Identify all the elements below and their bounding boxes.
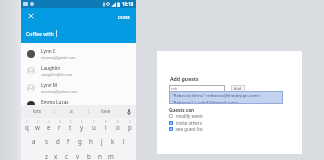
staticText: v — [76, 152, 80, 160]
staticText: o — [116, 123, 120, 131]
staticText: u — [92, 123, 96, 131]
button[interactable]: DONE — [118, 15, 130, 21]
button[interactable]: x — [51, 152, 61, 160]
staticText: Emma Lucas — [41, 99, 69, 105]
staticText: k — [111, 137, 115, 145]
staticText: w — [35, 123, 40, 131]
button[interactable]: 9 — [112, 123, 124, 131]
button[interactable]: k — [107, 137, 118, 145]
staticText: m — [108, 152, 114, 160]
staticText: 5 — [70, 120, 72, 124]
button[interactable]: v — [72, 152, 83, 160]
button[interactable]: reb — [169, 85, 225, 92]
button[interactable]: f — [63, 137, 74, 145]
button[interactable]: b — [83, 152, 94, 160]
button[interactable]: s — [40, 137, 52, 145]
staticText: j — [101, 137, 103, 145]
staticText: Lynn M — [41, 82, 58, 88]
button[interactable]: modify event — [169, 113, 205, 119]
staticText: b — [87, 152, 91, 160]
staticText: 2 — [37, 120, 39, 124]
staticText: s — [45, 137, 48, 145]
staticText: Guests can — [169, 107, 194, 113]
staticText: 1 — [26, 120, 28, 124]
button[interactable]: d — [52, 137, 63, 145]
button[interactable]: n — [94, 152, 105, 160]
staticText: Coffee with — [26, 30, 54, 37]
button[interactable]: c — [61, 152, 72, 160]
staticText: DONE — [118, 15, 130, 21]
button[interactable]: Laughlin — [21, 62, 136, 79]
staticText: slaughlin@ltk.com — [41, 72, 72, 77]
staticText: a — [70, 108, 73, 115]
staticText: 10:18 — [122, 1, 134, 7]
button[interactable]: j — [96, 137, 107, 145]
staticText: a — [32, 137, 36, 145]
button[interactable]: Voice input — [122, 105, 136, 118]
staticText: modify event — [176, 113, 203, 119]
button[interactable]: l — [118, 137, 129, 145]
button[interactable]: 7 — [88, 123, 100, 131]
staticText: i — [105, 123, 107, 131]
button[interactable]: lots — [21, 105, 54, 118]
staticText: 8 — [105, 120, 107, 124]
button[interactable]: 0 — [124, 123, 136, 131]
staticText: love — [101, 108, 111, 115]
staticText: p — [128, 123, 132, 131]
staticText: Add — [234, 86, 242, 91]
staticText: 4 — [59, 120, 61, 124]
button[interactable]: 5 — [65, 123, 76, 131]
staticText: mommq@yahoo.com — [41, 89, 78, 94]
staticText: c — [65, 152, 68, 160]
button[interactable]: Lynn M — [21, 79, 136, 96]
button[interactable]: 6 — [76, 123, 88, 131]
staticText: reb — [171, 86, 177, 91]
button[interactable]: a — [28, 137, 40, 145]
staticText: "Rebecca Johns" <rebecca@thedesign.com> — [172, 92, 261, 98]
staticText: l — [123, 137, 125, 145]
button[interactable]: Emma Lucas — [21, 96, 136, 113]
staticText: f — [67, 137, 70, 145]
staticText: x — [54, 152, 58, 160]
button[interactable]: g — [74, 137, 85, 145]
button[interactable]: 8 — [100, 123, 112, 131]
staticText: y — [80, 123, 84, 131]
staticText: z — [45, 152, 48, 160]
button[interactable]: Lynn C — [21, 45, 136, 62]
staticText: invite others — [176, 120, 202, 126]
staticText: Lynn C — [41, 48, 56, 54]
staticText: e — [47, 123, 51, 131]
staticText: see guest list — [176, 126, 203, 132]
staticText: 0 — [129, 120, 131, 124]
button[interactable]: z — [41, 152, 51, 160]
staticText: "Rebecca J." <reb32@gmail.com> — [172, 99, 239, 104]
button[interactable]: 3 — [43, 123, 54, 131]
staticText: q — [25, 123, 29, 131]
button[interactable]: 1 — [21, 123, 32, 131]
button[interactable]: h — [85, 137, 96, 145]
staticText: t — [69, 123, 72, 131]
staticText: 6 — [81, 120, 83, 124]
button[interactable]: 2 — [32, 123, 43, 131]
staticText: lots — [33, 108, 42, 115]
button[interactable]: Close — [28, 13, 34, 19]
staticText: Add guests — [170, 75, 199, 82]
staticText: n — [98, 152, 102, 160]
staticText: g — [78, 137, 82, 145]
staticText: r — [58, 123, 61, 131]
button[interactable]: see guest list — [169, 126, 205, 132]
button[interactable]: 4 — [54, 123, 65, 131]
button[interactable]: invite others — [169, 120, 204, 126]
button[interactable]: a — [55, 105, 88, 118]
staticText: 7 — [93, 120, 95, 124]
staticText: 3 — [48, 120, 50, 124]
staticText: erpnmq@gmail.com — [41, 55, 76, 60]
staticText: d — [56, 137, 60, 145]
staticText: 9 — [117, 120, 119, 124]
button[interactable]: Add — [231, 85, 245, 92]
staticText: Laughlin — [41, 65, 61, 71]
button[interactable]: m — [105, 152, 116, 160]
staticText: h — [89, 137, 93, 145]
button[interactable]: love — [89, 105, 122, 118]
